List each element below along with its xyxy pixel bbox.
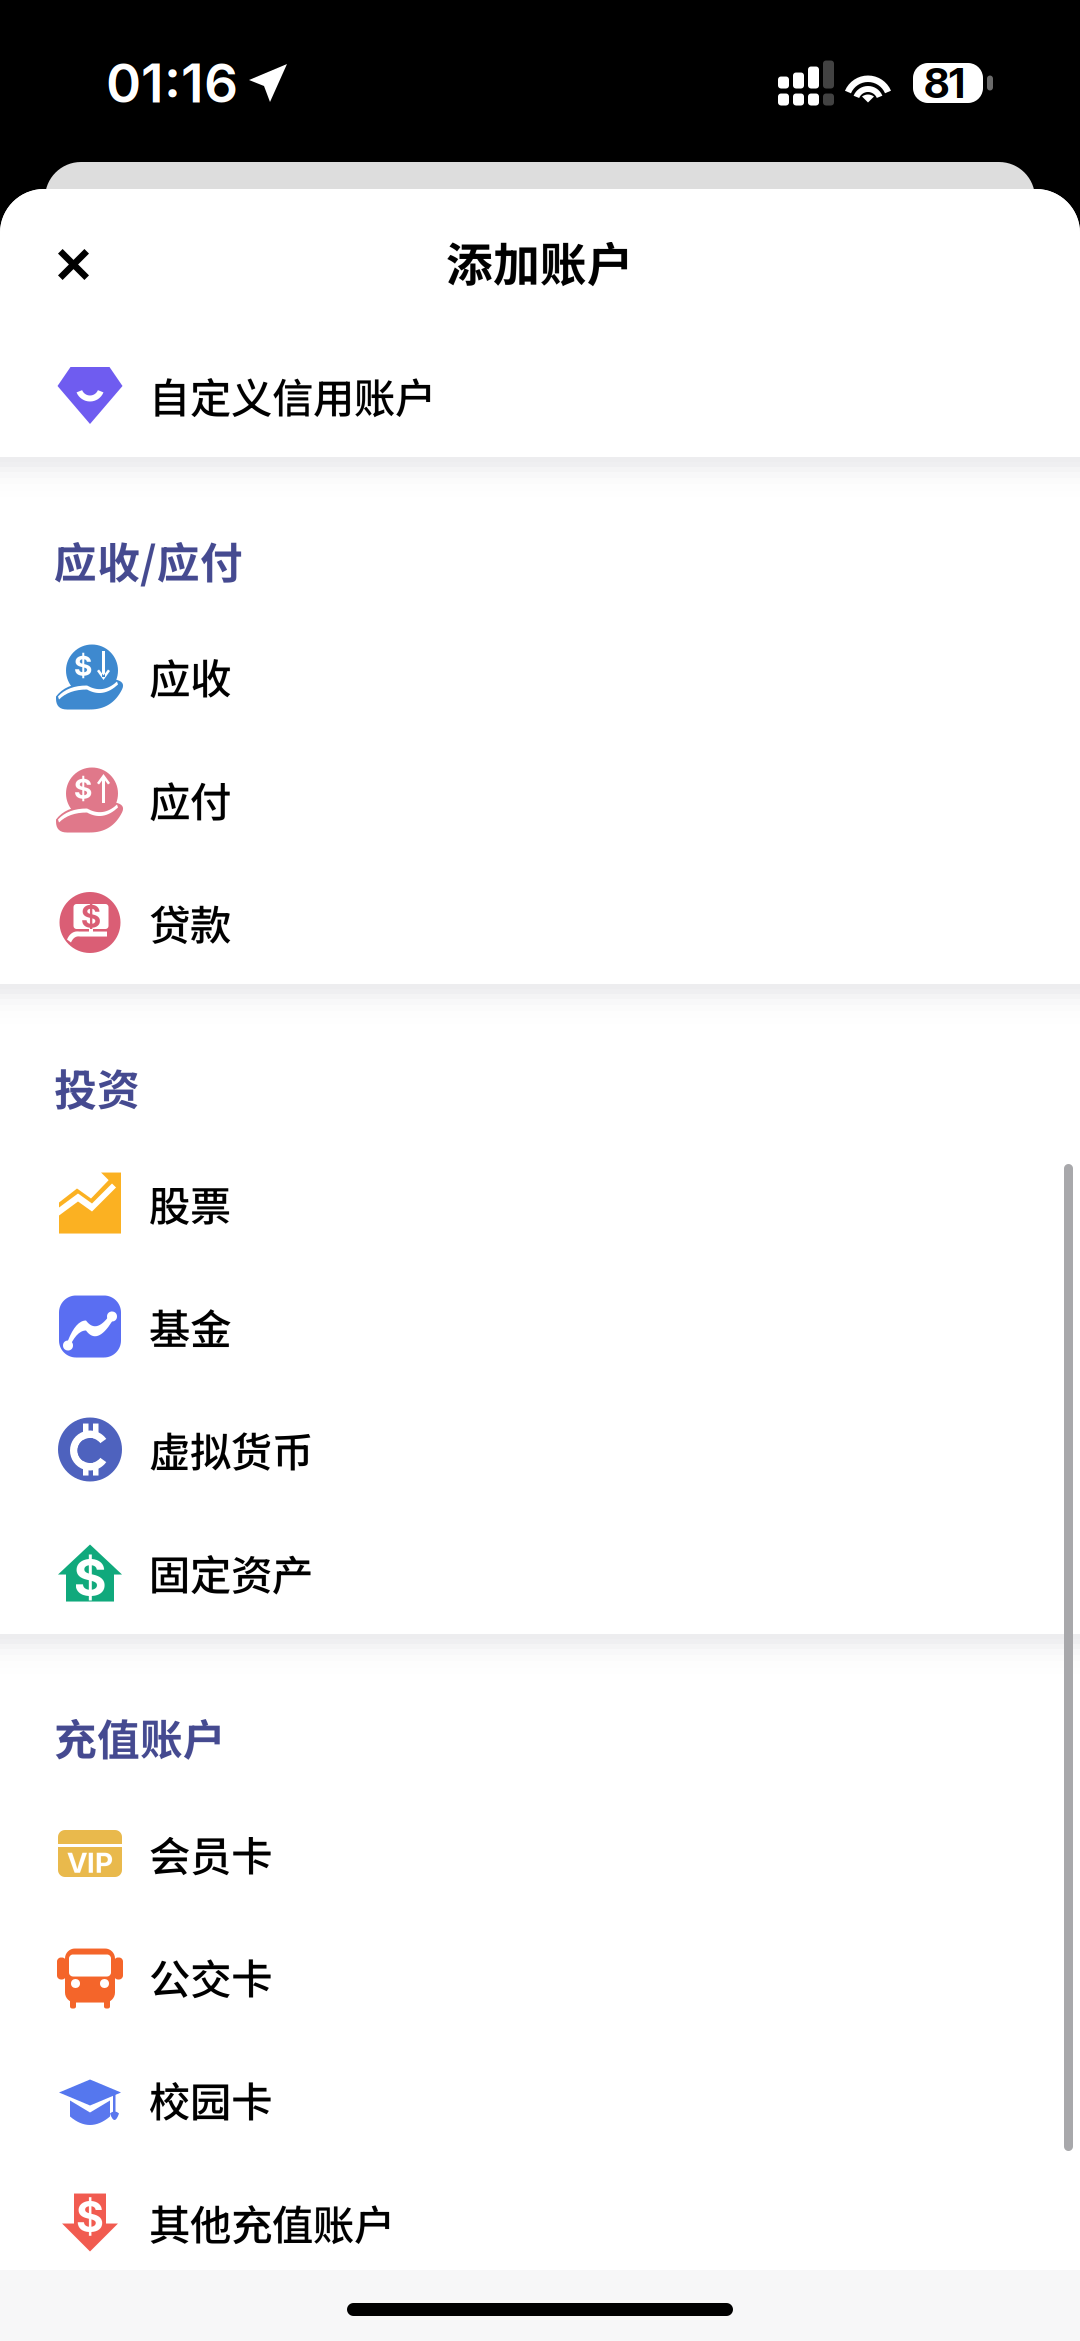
button[interactable]: VIP: [0, 1792, 1080, 1915]
button[interactable]: 校园卡: [0, 2038, 1080, 2161]
staticText: 01:16: [106, 51, 238, 115]
staticText: $: [73, 1547, 106, 1608]
staticText: 会员卡: [149, 1824, 272, 1883]
staticText: 应付: [149, 770, 231, 829]
button[interactable]: $: [0, 861, 1080, 984]
button[interactable]: 基金: [0, 1265, 1080, 1388]
button[interactable]: Close: [0, 189, 170, 334]
staticText: 充值账户: [54, 1706, 226, 1768]
button[interactable]: $: [0, 738, 1080, 861]
staticText: $: [76, 2191, 104, 2242]
staticText: 应收/应付: [54, 529, 243, 591]
button[interactable]: 自定义信用账户: [0, 334, 1080, 457]
staticText: 虚拟货币: [149, 1420, 313, 1479]
staticText: 基金: [149, 1297, 231, 1356]
button[interactable]: $: [0, 1511, 1080, 1634]
staticText: $: [74, 649, 92, 682]
staticText: $: [74, 772, 92, 805]
button[interactable]: 股票: [0, 1142, 1080, 1265]
staticText: $: [81, 898, 101, 935]
staticText: 固定资产: [149, 1543, 313, 1602]
staticText: 其他充值账户: [149, 2193, 395, 2252]
staticText: 投资: [54, 1056, 140, 1118]
staticText: 自定义信用账户: [149, 366, 436, 425]
staticText: 校园卡: [149, 2070, 272, 2129]
staticText: 添加账户: [446, 228, 634, 295]
button[interactable]: $: [0, 615, 1080, 738]
button[interactable]: 公交卡: [0, 1915, 1080, 2038]
staticText: 81: [924, 58, 965, 108]
staticText: 应收: [149, 647, 231, 706]
staticText: 公交卡: [149, 1947, 272, 2006]
button[interactable]: 虚拟货币: [0, 1388, 1080, 1511]
staticText: VIP: [67, 1846, 113, 1879]
staticText: 贷款: [149, 893, 231, 952]
button[interactable]: $: [0, 2161, 1080, 2284]
staticText: 股票: [149, 1174, 231, 1233]
